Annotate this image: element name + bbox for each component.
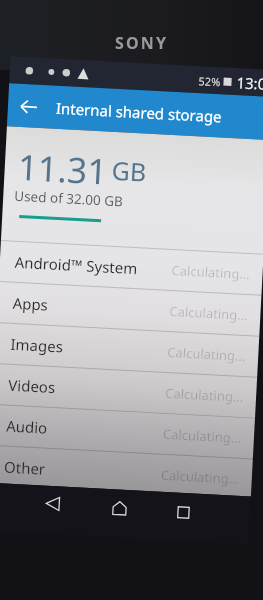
button[interactable]: Videos [0,364,257,418]
staticText: Images [10,334,64,356]
button[interactable]: Audio [0,405,255,459]
staticText: Apps [12,293,49,315]
staticText: Calculating... [171,261,251,283]
button[interactable]: Home [102,491,136,524]
button[interactable]: Apps [0,282,261,336]
staticText: 52% [198,73,221,89]
button[interactable]: Android™ System [0,241,263,295]
button[interactable]: Back [7,85,49,127]
staticText: Audio [6,416,49,438]
staticText: 11.31 [17,143,109,195]
button[interactable]: Other [0,446,253,499]
staticText: 13:0 [236,72,263,94]
staticText: Calculating... [169,302,249,324]
staticText: Internal shared storage [55,98,222,126]
staticText: Android™ System [14,252,138,278]
button[interactable]: Recents [166,495,200,529]
staticText: Videos [8,375,56,397]
staticText: Calculating... [165,384,244,406]
staticText: Calculating... [160,466,240,488]
staticText: Other [4,457,47,479]
staticText: GB [111,153,148,189]
staticText: Calculating... [163,425,242,447]
button[interactable]: Back [35,486,69,520]
staticText: Calculating... [167,343,247,365]
staticText: Used of 32.00 GB [14,187,124,210]
staticText: SONY [115,32,169,54]
button[interactable]: Images [0,323,259,377]
